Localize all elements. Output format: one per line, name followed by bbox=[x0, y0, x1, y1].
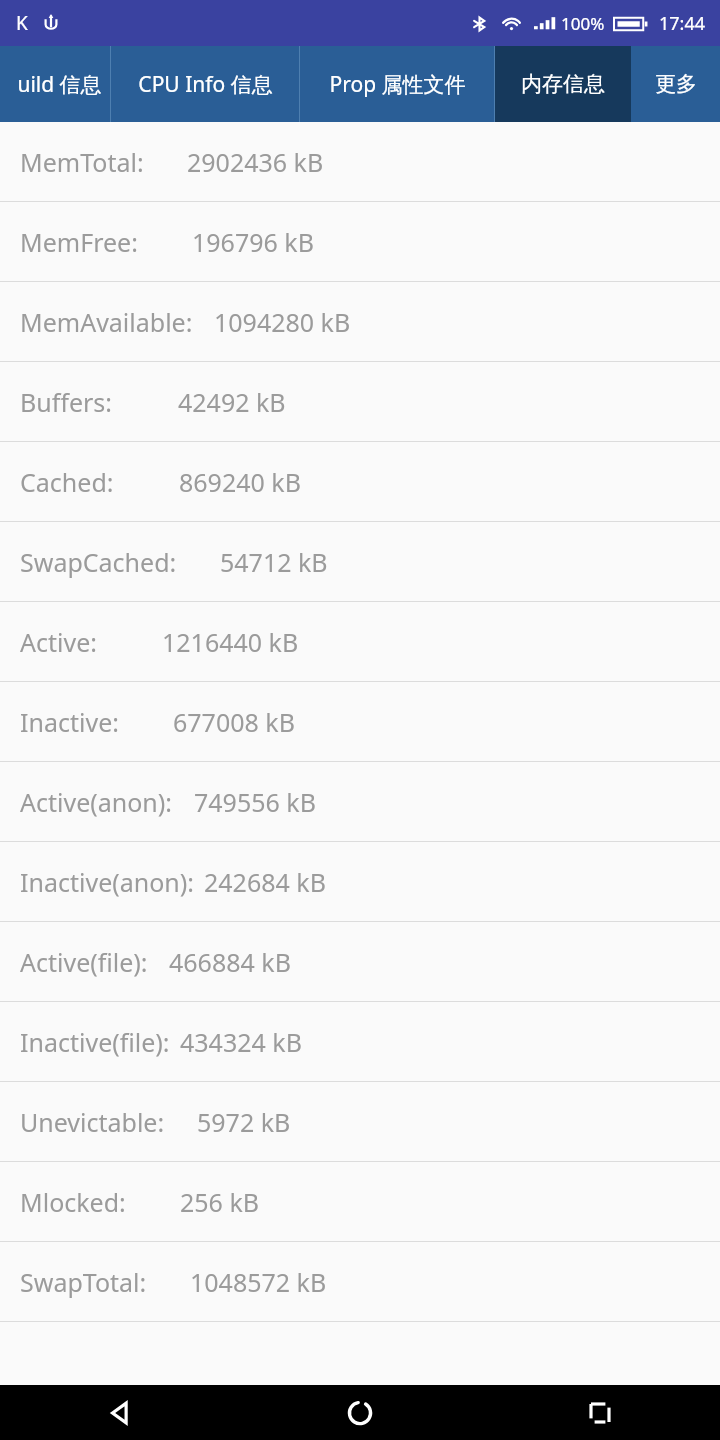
staticText: uild 信息 bbox=[17, 70, 102, 99]
staticText: Mlocked: bbox=[20, 1185, 126, 1219]
button[interactable]: Active(anon): bbox=[0, 762, 720, 842]
staticText: 434324 kB bbox=[180, 1025, 302, 1059]
staticText: 42492 kB bbox=[178, 385, 286, 419]
staticText: Unevictable: bbox=[20, 1105, 165, 1139]
button[interactable]: SwapTotal: bbox=[0, 1242, 720, 1322]
staticText: 100% bbox=[561, 12, 605, 35]
staticText: 1094280 kB bbox=[214, 305, 351, 339]
button[interactable]: uild 信息 bbox=[0, 46, 110, 122]
staticText: 1048572 kB bbox=[190, 1265, 327, 1299]
button[interactable]: Prop 属性文件 bbox=[300, 46, 494, 122]
staticText: Prop 属性文件 bbox=[329, 70, 466, 99]
staticText: Active: bbox=[20, 625, 97, 659]
staticText: Inactive(anon): bbox=[20, 865, 194, 899]
staticText: Active(anon): bbox=[20, 785, 173, 819]
button[interactable]: Back bbox=[0, 1385, 240, 1440]
staticText: Inactive(file): bbox=[20, 1025, 170, 1059]
staticText: 17:44 bbox=[659, 11, 706, 36]
staticText: Active(file): bbox=[20, 945, 148, 979]
button[interactable]: Buffers: bbox=[0, 362, 720, 442]
button[interactable]: SwapCached: bbox=[0, 522, 720, 602]
button[interactable]: MemFree: bbox=[0, 202, 720, 282]
staticText: K bbox=[16, 10, 28, 36]
button[interactable]: MemAvailable: bbox=[0, 282, 720, 362]
staticText: 2902436 kB bbox=[187, 145, 324, 179]
staticText: 242684 kB bbox=[204, 865, 326, 899]
button[interactable]: Cached: bbox=[0, 442, 720, 522]
button[interactable]: MemTotal: bbox=[0, 122, 720, 202]
staticText: SwapTotal: bbox=[20, 1265, 147, 1299]
staticText: 869240 kB bbox=[179, 465, 301, 499]
button[interactable]: Inactive: bbox=[0, 682, 720, 762]
staticText: 466884 kB bbox=[169, 945, 291, 979]
button[interactable]: Active(file): bbox=[0, 922, 720, 1002]
button[interactable]: Home bbox=[240, 1385, 480, 1440]
button[interactable]: Recent apps bbox=[480, 1385, 720, 1440]
staticText: MemAvailable: bbox=[20, 305, 193, 339]
staticText: 196796 kB bbox=[192, 225, 314, 259]
staticText: 54712 kB bbox=[220, 545, 328, 579]
staticText: CPU Info 信息 bbox=[138, 70, 273, 99]
button[interactable]: Active: bbox=[0, 602, 720, 682]
staticText: 749556 kB bbox=[194, 785, 316, 819]
staticText: 更多 bbox=[655, 71, 697, 97]
staticText: MemFree: bbox=[20, 225, 138, 259]
staticText: 1216440 kB bbox=[162, 625, 299, 659]
staticText: Buffers: bbox=[20, 385, 113, 419]
button[interactable]: Inactive(anon): bbox=[0, 842, 720, 922]
button[interactable]: Mlocked: bbox=[0, 1162, 720, 1242]
staticText: MemTotal: bbox=[20, 145, 144, 179]
button[interactable]: CPU Info 信息 bbox=[111, 46, 299, 122]
button[interactable]: Inactive(file): bbox=[0, 1002, 720, 1082]
staticText: 677008 kB bbox=[173, 705, 295, 739]
staticText: 5972 kB bbox=[197, 1105, 291, 1139]
staticText: 256 kB bbox=[180, 1185, 260, 1219]
button[interactable]: 内存信息 bbox=[495, 46, 631, 122]
staticText: 内存信息 bbox=[521, 71, 605, 97]
button[interactable]: 更多 bbox=[631, 46, 720, 122]
button[interactable]: Unevictable: bbox=[0, 1082, 720, 1162]
staticText: Cached: bbox=[20, 465, 114, 499]
staticText: SwapCached: bbox=[20, 545, 177, 579]
staticText: Inactive: bbox=[20, 705, 119, 739]
